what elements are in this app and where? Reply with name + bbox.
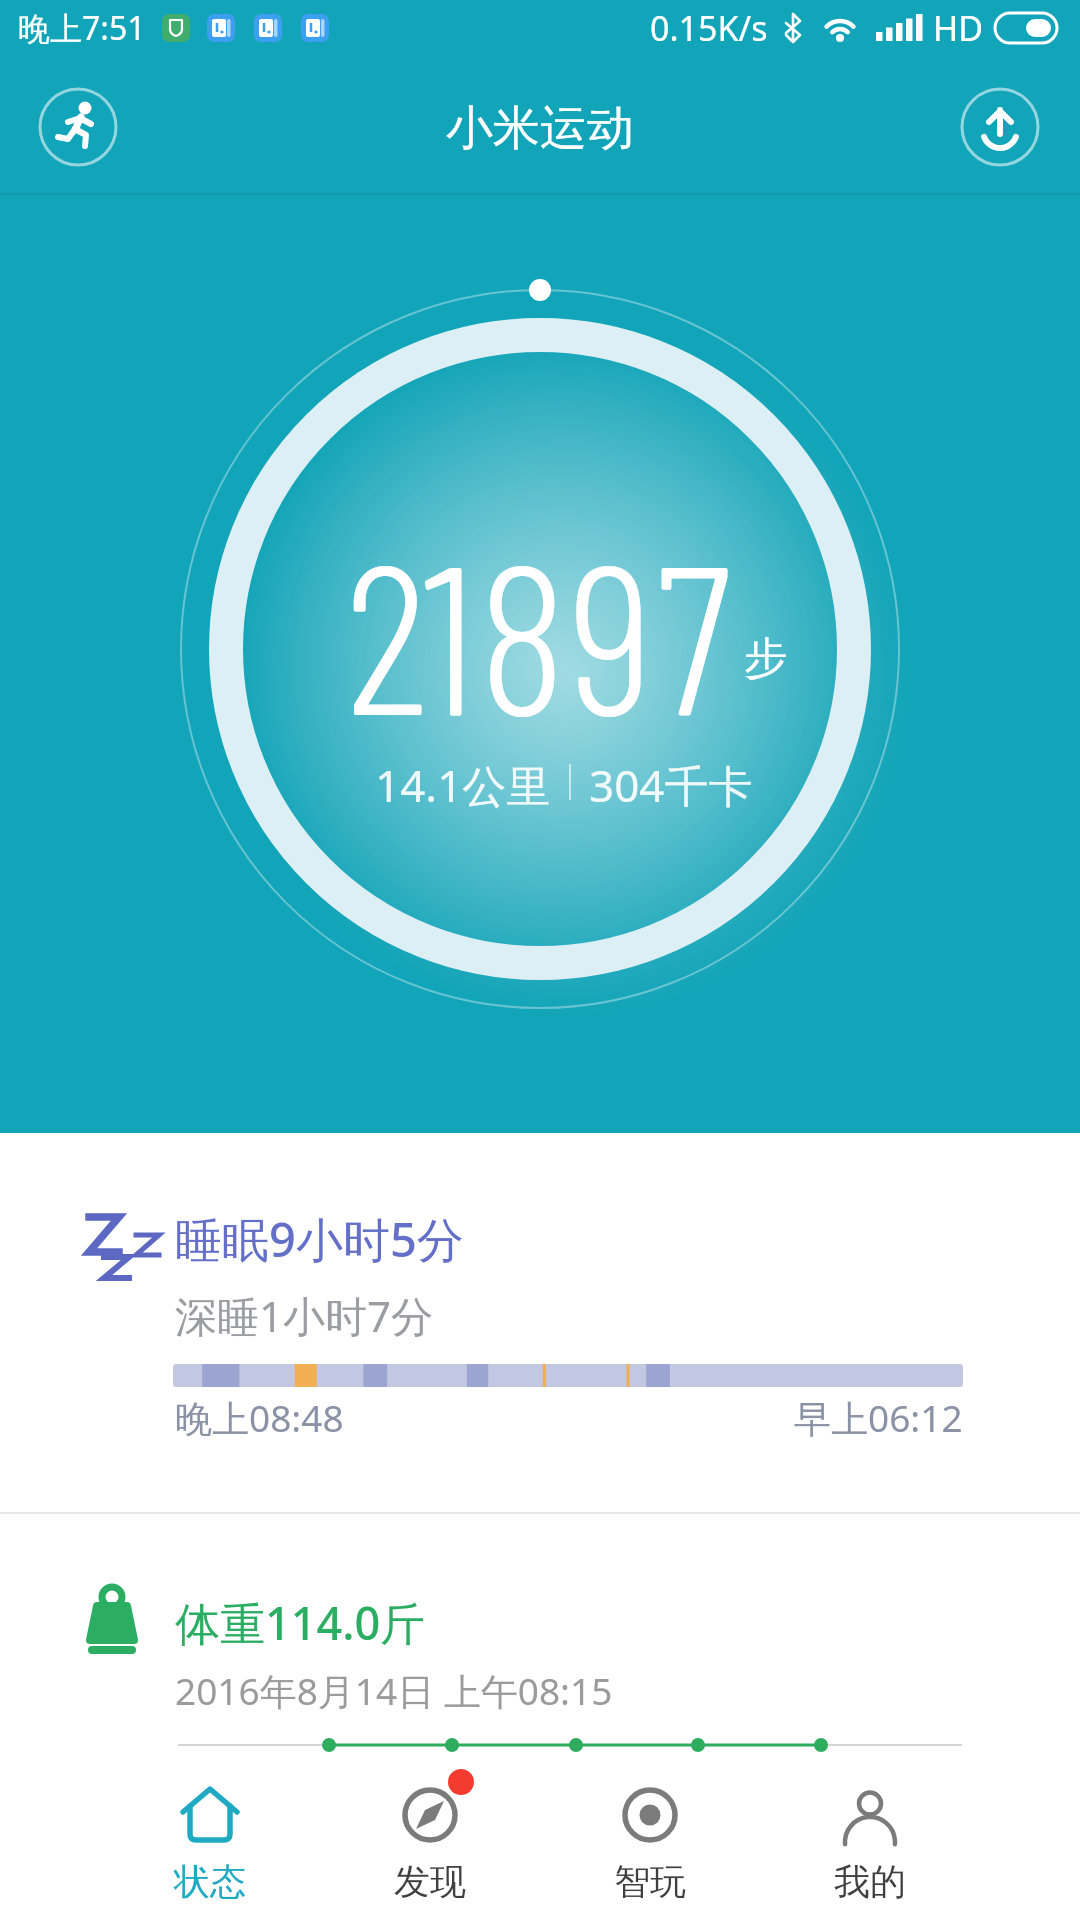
staticText: 深睡1小时7分 — [175, 1287, 434, 1344]
staticText: 体重114.0斤 — [175, 1592, 426, 1652]
button[interactable]: 睡眠9小时5分 — [0, 1133, 1080, 1512]
staticText: 步 — [744, 631, 788, 686]
staticText: 智玩 — [614, 1859, 686, 1904]
button[interactable]: 智玩 — [540, 1786, 760, 1920]
staticText: 21897 — [345, 504, 735, 734]
staticText: 0.15K/s — [650, 5, 768, 51]
staticText: 14.1公里 — [375, 755, 551, 809]
staticText: 2016年8月14日 上午08:15 — [175, 1665, 613, 1716]
staticText: HD — [933, 5, 984, 51]
button[interactable]: 状态 — [100, 1786, 320, 1920]
button[interactable]: 体重114.0斤 — [0, 1514, 1080, 1760]
button[interactable] — [39, 88, 117, 166]
button[interactable]: 我的 — [760, 1786, 980, 1920]
staticText: 我的 — [834, 1859, 906, 1904]
button[interactable]: 发现 — [320, 1786, 540, 1920]
staticText: 晚上7:51 — [18, 6, 146, 50]
staticText: 状态 — [174, 1859, 246, 1904]
button[interactable] — [961, 88, 1039, 166]
staticText: 晚上08:48 — [175, 1392, 344, 1443]
staticText: 发现 — [394, 1859, 466, 1904]
staticText: 早上06:12 — [794, 1392, 963, 1443]
staticText: 304千卡 — [589, 755, 753, 809]
staticText: 睡眠9小时5分 — [175, 1207, 464, 1267]
staticText: 小米运动 — [446, 99, 634, 158]
